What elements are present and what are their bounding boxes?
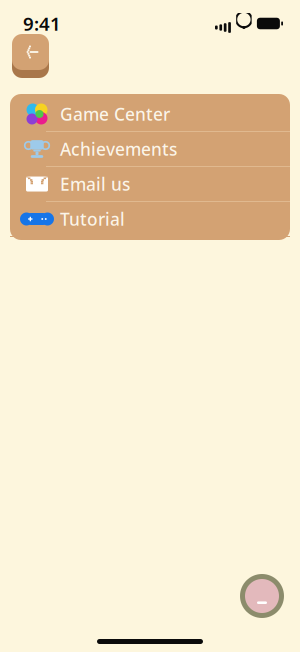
staticText: Tutorial — [60, 207, 125, 230]
staticText: Achievements — [60, 137, 177, 160]
staticText: 9:41 — [23, 11, 61, 36]
staticText: Game Center — [60, 102, 170, 125]
button[interactable]: Tutorial — [10, 202, 290, 237]
button[interactable]: Game Center — [10, 97, 290, 132]
button[interactable]: Remove — [238, 572, 286, 620]
button[interactable]: Email us — [10, 167, 290, 202]
button[interactable]: Achievements — [10, 132, 290, 167]
staticText: Email us — [60, 172, 130, 195]
button[interactable]: Back — [10, 34, 51, 78]
